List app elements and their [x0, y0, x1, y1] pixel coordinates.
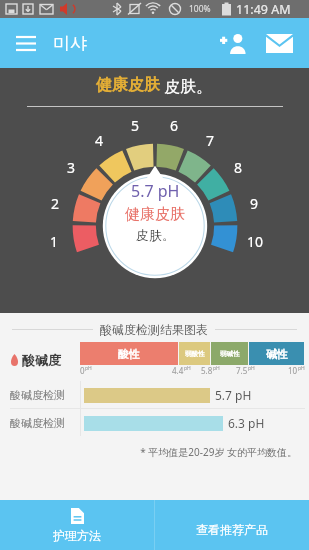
- staticText: 7.5: [236, 365, 248, 376]
- staticText: 酸碱度检测: [10, 388, 65, 402]
- staticText: 5: [131, 116, 140, 135]
- staticText: 健康皮肤: [96, 75, 160, 95]
- staticText: 5.7 pH: [131, 180, 180, 202]
- staticText: 10: [247, 232, 264, 251]
- staticText: 酸碱度: [22, 352, 61, 368]
- staticText: 1: [50, 232, 59, 251]
- staticText: pH: [248, 365, 255, 372]
- staticText: 100%: [189, 3, 211, 15]
- staticText: 8: [234, 158, 243, 177]
- button[interactable]: 酸碱度检测: [10, 409, 305, 436]
- button[interactable]: Mail: [259, 23, 299, 63]
- staticText: 11:49 AM: [236, 1, 291, 18]
- staticText: 4: [95, 131, 104, 150]
- staticText: 9: [250, 194, 259, 213]
- staticText: pH: [85, 365, 92, 372]
- staticText: 미샤: [53, 33, 87, 54]
- button[interactable]: Add friend: [213, 23, 253, 63]
- staticText: pH: [213, 365, 220, 372]
- button[interactable]: 查看推荐产品: [155, 500, 309, 550]
- staticText: 查看推荐产品: [196, 522, 268, 537]
- staticText: 7: [206, 131, 215, 150]
- staticText: 健康皮肤: [125, 205, 185, 224]
- staticText: pH: [298, 365, 305, 372]
- staticText: 10: [288, 365, 298, 376]
- staticText: 护理方法: [53, 528, 101, 543]
- button[interactable]: Menu: [8, 25, 44, 61]
- staticText: 5.7 pH: [215, 387, 252, 403]
- staticText: 弱酸性: [185, 350, 205, 358]
- staticText: 皮肤。: [160, 75, 213, 97]
- staticText: 2: [51, 194, 60, 213]
- staticText: * 平均值是20-29岁 女的平均数值。: [0, 445, 297, 459]
- staticText: 6: [170, 116, 179, 135]
- staticText: 酸碱度检测: [10, 416, 65, 430]
- staticText: pH: [184, 365, 191, 372]
- staticText: 4.4: [172, 365, 184, 376]
- button[interactable]: 护理方法: [0, 500, 154, 550]
- staticText: 皮肤。: [136, 227, 175, 243]
- button[interactable]: 酸碱度检测: [10, 381, 305, 408]
- staticText: 3: [67, 158, 76, 177]
- staticText: 6.3 pH: [228, 415, 265, 431]
- staticText: 5.8: [201, 365, 213, 376]
- staticText: 酸性: [118, 347, 140, 361]
- staticText: 碱性: [266, 347, 288, 361]
- staticText: 酸碱度检测结果图表: [100, 322, 208, 337]
- staticText: 弱碱性: [220, 350, 240, 358]
- staticText: 0: [80, 365, 85, 376]
